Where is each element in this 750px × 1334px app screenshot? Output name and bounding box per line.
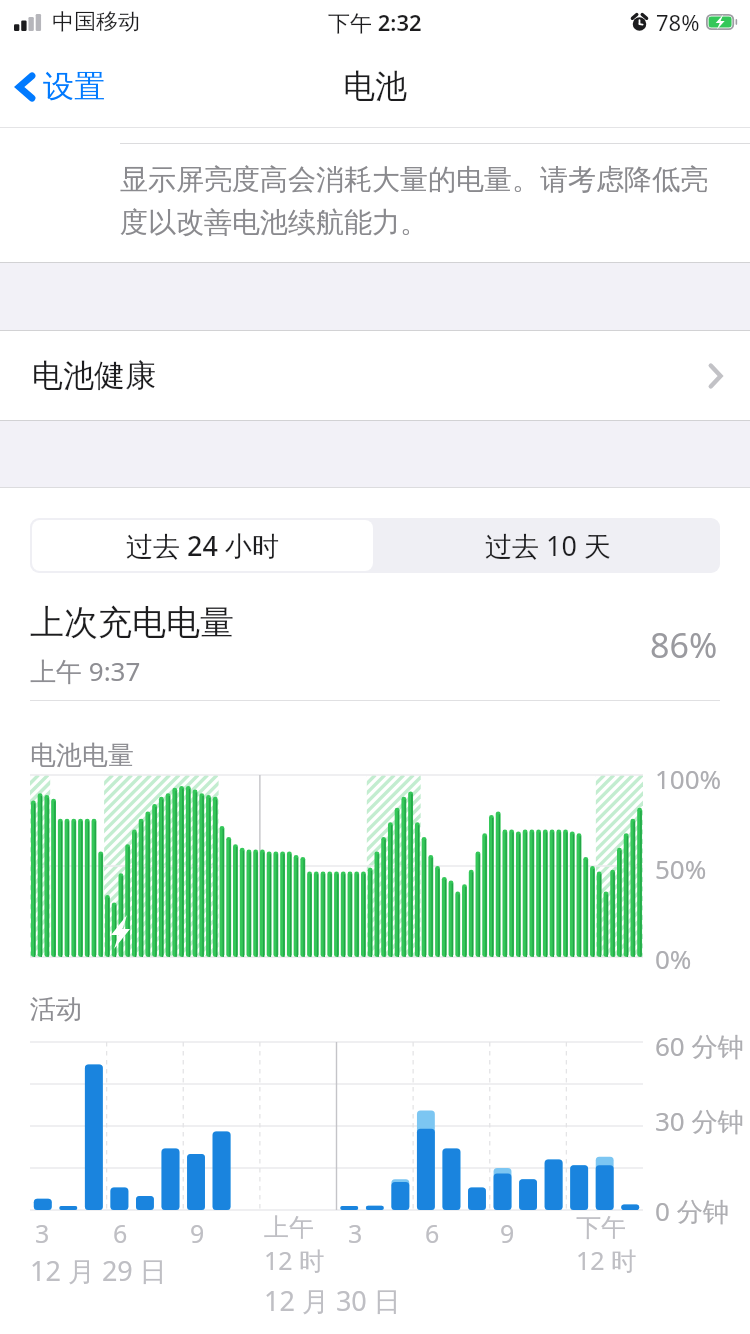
staticText: 3 [35,1216,50,1250]
staticText: 9 [190,1216,205,1250]
staticText: 上午 [264,1212,314,1243]
staticText: 6 [113,1216,128,1250]
staticText: 12 时 [264,1243,325,1277]
staticText: 9 [500,1216,515,1250]
staticText: 显示屏亮度高会消耗大量的电量。请考虑降低亮度以改善电池续航能力。 [120,162,714,240]
staticText: 86% [650,622,718,668]
staticText: 50% [655,851,707,886]
staticText: 100% [655,761,722,796]
button[interactable]: 设置 [10,57,111,116]
staticText: 12 月 29 日 [30,1252,167,1289]
staticText: 6 [425,1216,440,1250]
staticText: 0% [655,941,692,976]
staticText: 78% [656,7,700,37]
button[interactable]: 电池健康 [0,331,750,420]
staticText: 活动 [30,993,82,1026]
staticText: 设置 [43,67,105,106]
staticText: 上次充电电量 [30,601,234,644]
staticText: 中国移动 [52,8,140,36]
staticText: 3 [348,1216,363,1250]
staticText: 电池电量 [30,739,134,772]
staticText: 过去 24 小时 [126,527,279,564]
staticText: 上午 9:37 [30,653,141,689]
staticText: 电池健康 [32,356,156,395]
button[interactable]: 过去 24 小时 [32,520,373,571]
button[interactable]: 过去 10 天 [375,518,720,573]
staticText: 12 时 [576,1243,637,1277]
staticText: 电池 [343,66,407,106]
staticText: 30 分钟 [655,1103,744,1139]
staticText: 下午 2:32 [328,7,422,37]
staticText: 0 分钟 [655,1193,729,1229]
staticText: 12 月 30 日 [264,1282,401,1319]
staticText: 过去 10 天 [485,527,611,564]
staticText: 60 分钟 [655,1028,744,1064]
staticText: 下午 [576,1212,626,1243]
